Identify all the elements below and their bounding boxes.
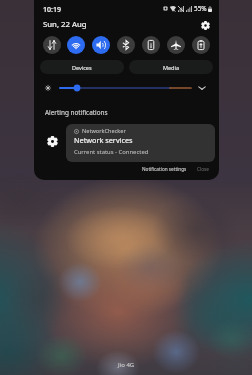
button[interactable]: Brightness xyxy=(60,85,191,91)
button[interactable]: Devices xyxy=(40,60,124,74)
button[interactable]: Quick setting xyxy=(192,36,210,54)
staticText: Current status - Connected xyxy=(74,148,149,156)
button[interactable]: Quick setting xyxy=(167,36,185,54)
staticText: Devices xyxy=(72,64,92,71)
button[interactable]: Quick setting xyxy=(43,36,61,54)
button[interactable]: Notification settings xyxy=(46,135,58,147)
button[interactable]: Media xyxy=(129,60,213,74)
button[interactable]: Notification settings xyxy=(140,165,189,173)
button[interactable]: Settings xyxy=(199,19,211,31)
button[interactable]: NetworkChecker xyxy=(66,124,215,162)
button[interactable]: Quick setting xyxy=(67,36,85,54)
staticText: Alerting notifications xyxy=(45,108,108,117)
button[interactable]: Expand xyxy=(197,84,207,92)
staticText: 10:19 xyxy=(43,5,61,15)
staticText: Sun, 22 Aug xyxy=(43,19,87,30)
staticText: Network services xyxy=(74,135,133,145)
staticText: Media xyxy=(163,64,179,71)
staticText: 55% xyxy=(194,4,207,13)
staticText: Notification settings xyxy=(142,166,187,172)
staticText: Jio 4G xyxy=(118,361,135,369)
staticText: NetworkChecker xyxy=(82,127,126,135)
button[interactable]: Quick setting xyxy=(142,36,160,54)
button[interactable]: Close xyxy=(195,165,211,173)
button[interactable]: Quick setting xyxy=(92,36,110,54)
button[interactable]: Quick setting xyxy=(117,36,135,54)
staticText: Close xyxy=(197,166,209,172)
